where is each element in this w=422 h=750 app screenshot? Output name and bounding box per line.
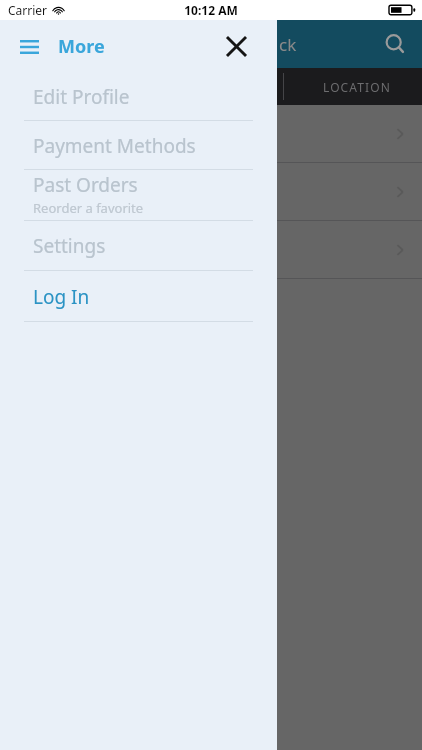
staticText: More xyxy=(58,34,105,59)
staticText: Payment Methods xyxy=(33,133,196,159)
staticText: Settings xyxy=(33,233,106,259)
staticText: Log In xyxy=(33,284,90,310)
button[interactable]: Search xyxy=(382,31,408,57)
button[interactable]: Edit Profile xyxy=(0,72,277,121)
button[interactable]: Log In xyxy=(0,271,277,322)
staticText: Edit Profile xyxy=(33,84,130,110)
button[interactable]: Menu xyxy=(18,34,105,59)
staticText: ck xyxy=(279,33,297,56)
button[interactable]: Close xyxy=(219,29,253,63)
button[interactable]: Past Orders xyxy=(0,170,277,221)
staticText: Reorder a favorite xyxy=(33,199,144,217)
button[interactable]: Payment Methods xyxy=(0,121,277,170)
staticText: 10:12 AM xyxy=(184,2,238,18)
staticText: Carrier xyxy=(8,2,48,18)
staticText: LOCATION xyxy=(323,79,391,95)
other: Menu xyxy=(18,36,40,58)
staticText: Past Orders xyxy=(33,172,138,198)
button[interactable]: Settings xyxy=(0,221,277,271)
